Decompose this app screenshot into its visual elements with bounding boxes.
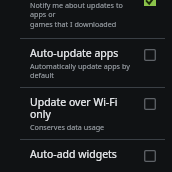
staticText: Auto-update apps xyxy=(30,46,119,60)
button[interactable]: Notify me about updates to apps or xyxy=(0,0,172,32)
button[interactable]: Update over Wi-Fi only xyxy=(0,88,172,139)
staticText: Conserves data usage xyxy=(30,122,105,132)
staticText: games that I downloaded xyxy=(30,19,117,29)
staticText: Automatically update apps by default xyxy=(30,61,138,80)
button[interactable]: Auto-update apps xyxy=(0,39,172,87)
button[interactable]: Auto-add widgets xyxy=(0,140,172,172)
staticText: Auto-add widgets xyxy=(30,147,117,161)
staticText: Notify me about updates to apps or xyxy=(30,0,138,19)
staticText: Update over Wi-Fi only xyxy=(30,95,138,121)
